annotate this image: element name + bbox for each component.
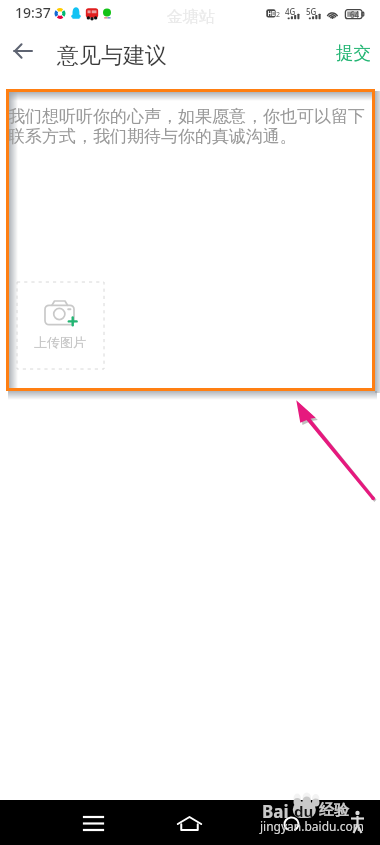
- staticText: 2: [276, 10, 281, 20]
- button[interactable]: 提交: [318, 34, 380, 72]
- staticText: 意见与建议: [57, 42, 167, 70]
- staticText: 4G: [285, 6, 296, 17]
- staticText: 64: [350, 9, 360, 20]
- button[interactable]: Back: [4, 32, 42, 70]
- staticText: 经验: [319, 801, 349, 820]
- staticText: 提交: [336, 42, 371, 64]
- staticText: 我们想听听你的心声，如果愿意，你也可以留下联系方式，我们期待与你的真诚沟通。: [8, 106, 375, 147]
- button[interactable]: Recent apps: [72, 802, 115, 845]
- staticText: 19:37: [15, 3, 51, 22]
- button[interactable]: Back: [270, 802, 313, 845]
- staticText: 金塘站: [167, 7, 215, 27]
- staticText: du: [294, 801, 314, 821]
- staticText: jingyan.baidu.com: [260, 818, 364, 834]
- button[interactable]: Home: [168, 802, 211, 845]
- staticText: 5G: [306, 6, 317, 17]
- staticText: 上传图片: [34, 334, 86, 350]
- button[interactable]: Upload image: [17, 282, 104, 369]
- staticText: Bai: [262, 800, 289, 823]
